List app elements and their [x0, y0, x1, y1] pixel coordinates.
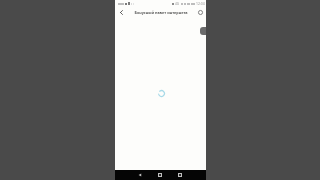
button[interactable]: Back — [115, 6, 127, 18]
button[interactable]: Side panel handle — [200, 27, 206, 35]
staticText: 12:04 — [196, 1, 205, 6]
button[interactable]: Recent apps — [175, 170, 185, 180]
staticText: Бонусный пакет интернета — [134, 10, 188, 15]
staticText: 4G — [175, 2, 180, 6]
button[interactable]: Back — [135, 170, 145, 180]
button[interactable]: Home — [155, 170, 165, 180]
button[interactable]: Help — [195, 7, 206, 18]
